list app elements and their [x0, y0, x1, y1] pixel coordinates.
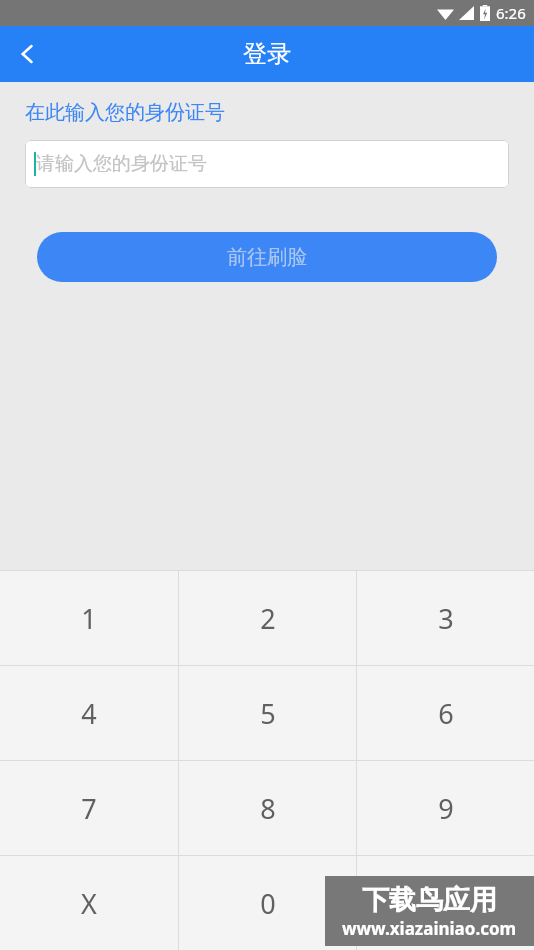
- button[interactable]: 7: [0, 761, 178, 855]
- button[interactable]: 1: [0, 571, 178, 665]
- staticText: 7: [81, 790, 97, 827]
- button[interactable]: X: [0, 856, 178, 950]
- button[interactable]: 请输入您的身份证号: [25, 140, 509, 188]
- staticText: 下载鸟应用: [362, 883, 497, 917]
- staticText: 登录: [243, 39, 291, 69]
- staticText: X: [81, 885, 97, 922]
- staticText: 3: [438, 600, 454, 637]
- staticText: www.xiazainiao.com: [342, 917, 517, 940]
- staticText: 在此输入您的身份证号: [25, 100, 225, 125]
- button[interactable]: 9: [357, 761, 534, 855]
- staticText: 0: [260, 885, 276, 922]
- button[interactable]: 0: [179, 856, 356, 950]
- button[interactable]: 前往刷脸: [37, 232, 497, 282]
- button[interactable]: 8: [179, 761, 356, 855]
- staticText: 4: [81, 695, 97, 732]
- button[interactable]: Back: [0, 26, 56, 82]
- button[interactable]: [357, 856, 534, 950]
- button[interactable]: 5: [179, 666, 356, 760]
- staticText: 9: [438, 790, 454, 827]
- staticText: 5: [260, 695, 276, 732]
- staticText: 2: [260, 600, 276, 637]
- staticText: 6: [438, 695, 454, 732]
- staticText: 前往刷脸: [227, 245, 307, 270]
- staticText: 6:26: [496, 3, 526, 23]
- staticText: 1: [81, 600, 97, 637]
- staticText: 8: [260, 790, 276, 827]
- button[interactable]: 6: [357, 666, 534, 760]
- button[interactable]: 3: [357, 571, 534, 665]
- button[interactable]: 4: [0, 666, 178, 760]
- staticText: 请输入您的身份证号: [36, 152, 207, 176]
- button[interactable]: 2: [179, 571, 356, 665]
